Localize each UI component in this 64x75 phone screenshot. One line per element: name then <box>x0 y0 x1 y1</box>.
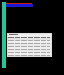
button[interactable] <box>7 33 52 57</box>
button[interactable] <box>7 49 52 52</box>
button[interactable] <box>7 43 52 46</box>
button[interactable] <box>7 52 52 55</box>
button[interactable] <box>7 37 52 40</box>
button[interactable] <box>7 40 52 43</box>
button[interactable] <box>7 55 52 57</box>
button[interactable] <box>7 46 52 49</box>
